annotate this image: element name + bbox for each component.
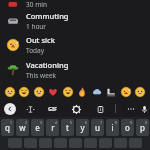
button[interactable]: Out sick: [0, 33, 150, 57]
staticText: Vacationing: [26, 60, 69, 70]
button[interactable]: Commuting: [0, 8, 150, 33]
staticText: 3: [40, 120, 43, 125]
staticText: t: [66, 122, 69, 133]
button[interactable]: Emoji: [61, 85, 75, 99]
staticText: r: [51, 122, 55, 133]
button[interactable]: Emoji: [75, 85, 89, 99]
button[interactable]: p: [136, 119, 149, 136]
button[interactable]: u: [91, 119, 104, 136]
button[interactable]: Emoji: [3, 85, 17, 99]
button[interactable]: i: [106, 119, 119, 136]
staticText: 7: [100, 120, 103, 125]
button[interactable]: Settings: [68, 101, 84, 117]
button[interactable]: Voice input: [139, 101, 150, 117]
button[interactable]: Text editing: [22, 101, 38, 117]
button[interactable]: [99, 138, 112, 148]
button[interactable]: More options: [123, 101, 139, 117]
button[interactable]: Emoji: [46, 85, 60, 99]
staticText: 4: [55, 120, 58, 125]
button[interactable]: [8, 138, 22, 148]
button[interactable]: w: [16, 119, 29, 136]
button[interactable]: 30 min: [0, 0, 150, 8]
staticText: 1: [10, 120, 13, 125]
button[interactable]: [84, 138, 97, 148]
button[interactable]: [39, 138, 52, 148]
staticText: u: [95, 122, 100, 133]
button[interactable]: t: [61, 119, 74, 136]
staticText: 6: [85, 120, 88, 125]
button[interactable]: Emoji: [104, 85, 118, 99]
button[interactable]: Clipboard: [92, 101, 108, 117]
staticText: y: [80, 122, 85, 133]
staticText: 2: [25, 120, 28, 125]
button[interactable]: GIF: [44, 100, 62, 117]
button[interactable]: Emoji: [32, 85, 46, 99]
button[interactable]: r: [46, 119, 59, 136]
button[interactable]: q: [1, 119, 14, 136]
staticText: e: [35, 122, 40, 133]
staticText: 30 min: [26, 0, 47, 8]
staticText: 0: [145, 120, 148, 125]
button[interactable]: o: [121, 119, 134, 136]
button[interactable]: Emoji: [17, 85, 31, 99]
button[interactable]: Emoji: [133, 85, 147, 99]
staticText: 5: [70, 120, 73, 125]
button[interactable]: Vacationing: [0, 57, 150, 82]
staticText: 9: [130, 120, 133, 125]
button[interactable]: [24, 138, 37, 148]
staticText: Commuting: [26, 11, 69, 21]
staticText: i: [111, 122, 114, 133]
staticText: o: [125, 122, 130, 133]
staticText: Today: [26, 46, 45, 55]
button[interactable]: [69, 138, 82, 148]
button[interactable]: e: [31, 119, 44, 136]
staticText: This week: [26, 71, 57, 80]
staticText: q: [5, 122, 10, 133]
button[interactable]: y: [76, 119, 89, 136]
button[interactable]: [54, 138, 67, 148]
staticText: 8: [115, 120, 118, 125]
button[interactable]: Back: [4, 103, 16, 115]
staticText: p: [140, 122, 145, 133]
staticText: Out sick: [26, 35, 55, 45]
button[interactable]: [129, 138, 142, 148]
staticText: GIF: [48, 105, 58, 112]
staticText: 1 hour: [26, 22, 47, 31]
staticText: w: [19, 122, 26, 133]
button[interactable]: Emoji: [90, 85, 104, 99]
button[interactable]: Emoji: [119, 85, 133, 99]
button[interactable]: [114, 138, 127, 148]
